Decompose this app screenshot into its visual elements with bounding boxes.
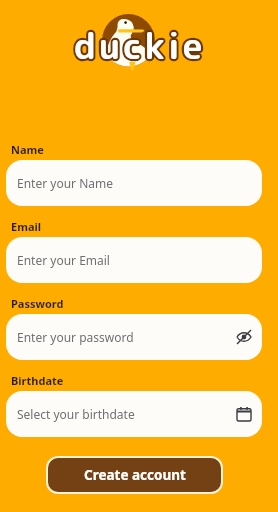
button[interactable]: Enter your Email — [6, 237, 262, 283]
button[interactable]: Create account — [48, 458, 221, 492]
staticText: Email — [11, 219, 42, 234]
staticText: Birthdate — [11, 373, 64, 388]
staticText: Enter your Email — [17, 252, 251, 268]
staticText: Enter your password — [17, 329, 237, 345]
button[interactable]: Select your birthdate — [6, 391, 262, 437]
button[interactable]: Enter your password — [6, 314, 262, 360]
staticText: Enter your Name — [17, 175, 251, 191]
staticText: duckie — [74, 20, 206, 70]
staticText: Name — [11, 142, 44, 157]
staticText: duckie — [74, 20, 206, 70]
other: Toggle password visibility — [237, 330, 251, 344]
staticText: Password — [11, 296, 64, 311]
staticText: Create account — [84, 466, 186, 484]
staticText: Select your birthdate — [17, 406, 237, 422]
button[interactable]: Enter your Name — [6, 160, 262, 206]
other: Pick date — [237, 407, 251, 421]
